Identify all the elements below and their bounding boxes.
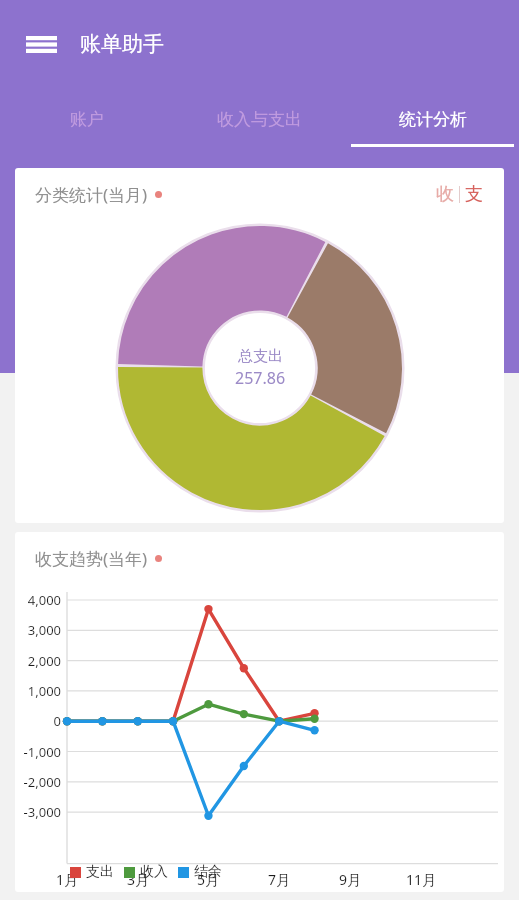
staticText: 总支出 — [238, 347, 283, 366]
staticText: 2,000 — [15, 652, 61, 670]
button[interactable]: 结余 — [173, 860, 227, 884]
staticText: -2,000 — [15, 773, 61, 791]
button[interactable]: 支出 — [65, 860, 119, 884]
button[interactable]: 统计分析 — [346, 88, 519, 150]
staticText: 收 — [436, 183, 454, 206]
staticText: 11月 — [404, 870, 438, 889]
staticText: 4,000 — [15, 591, 61, 609]
button[interactable]: 支 — [460, 180, 488, 209]
staticText: 分类统计(当月) — [35, 183, 148, 206]
staticText: 结余 — [194, 863, 222, 881]
staticText: 收支趋势(当年) — [35, 547, 148, 570]
staticText: -1,000 — [15, 743, 61, 761]
button[interactable]: 收入与支出 — [173, 88, 346, 150]
staticText: 1月 — [50, 870, 84, 889]
staticText: 收入与支出 — [217, 109, 302, 130]
staticText: 统计分析 — [399, 109, 467, 130]
button[interactable]: 收入 — [119, 860, 173, 884]
staticText: 支出 — [86, 863, 114, 881]
staticText: 1,000 — [15, 682, 61, 700]
button[interactable]: Open navigation menu — [14, 17, 68, 71]
staticText: 收入 — [140, 863, 168, 881]
staticText: 9月 — [333, 870, 367, 889]
staticText: 7月 — [262, 870, 296, 889]
staticText: 账户 — [70, 109, 104, 130]
staticText: 0 — [15, 712, 61, 730]
staticText: 257.86 — [235, 367, 286, 389]
button[interactable]: 账户 — [0, 88, 173, 150]
staticText: 3,000 — [15, 621, 61, 639]
staticText: 3月 — [121, 870, 155, 889]
staticText: 支 — [465, 183, 483, 206]
staticText: 5月 — [191, 870, 225, 889]
staticText: -3,000 — [15, 803, 61, 821]
staticText: 账单助手 — [80, 31, 164, 57]
button[interactable]: 收 — [431, 180, 459, 209]
